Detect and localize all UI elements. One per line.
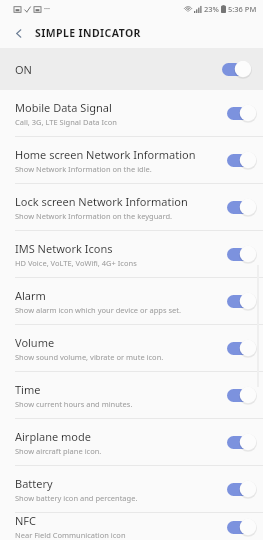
staticText: Show alarm icon which your device or app… bbox=[15, 305, 182, 315]
staticText: Show aircraft plane icon. bbox=[15, 446, 102, 456]
staticText: Show sound volume, vibrate or mute icon. bbox=[15, 352, 164, 362]
button[interactable]: ON bbox=[0, 48, 263, 90]
button[interactable]: Lock screen Network Information bbox=[0, 184, 263, 230]
staticText: Battery bbox=[15, 476, 53, 491]
staticText: HD Voice, VoLTE, VoWifi, 4G+ Icons bbox=[15, 258, 137, 268]
button[interactable]: Toggle bbox=[227, 104, 257, 122]
button[interactable]: Volume bbox=[0, 325, 263, 371]
button[interactable]: Toggle bbox=[227, 480, 257, 498]
button[interactable]: Back bbox=[8, 22, 30, 44]
staticText: ON bbox=[15, 62, 32, 77]
staticText: NFC bbox=[15, 513, 37, 528]
staticText: Time bbox=[15, 382, 41, 397]
button[interactable]: Toggle bbox=[227, 386, 257, 404]
button[interactable]: Alarm bbox=[0, 278, 263, 324]
staticText: Show battery icon and percentage. bbox=[15, 493, 138, 503]
staticText: Volume bbox=[15, 335, 55, 350]
staticText: Show current hours and minutes. bbox=[15, 399, 133, 409]
staticText: Alarm bbox=[15, 288, 46, 303]
staticText: Near Field Communication icon bbox=[15, 530, 126, 540]
staticText: Show Network Information on the idle. bbox=[15, 164, 152, 174]
button[interactable]: Toggle bbox=[227, 433, 257, 451]
staticText: Show Network Information on the keyguard… bbox=[15, 211, 173, 221]
staticText: Call, 3G, LTE Signal Data Icon bbox=[15, 117, 117, 127]
staticText: Mobile Data Signal bbox=[15, 100, 112, 115]
button[interactable]: Toggle bbox=[227, 339, 257, 357]
staticText: Home screen Network Information bbox=[15, 147, 196, 162]
button[interactable]: Home screen Network Information bbox=[0, 137, 263, 183]
staticText: ··· bbox=[44, 4, 50, 14]
staticText: IMS Network Icons bbox=[15, 241, 113, 256]
staticText: 5:36 PM bbox=[228, 4, 257, 14]
staticText: Lock screen Network Information bbox=[15, 194, 188, 209]
button[interactable]: Mobile Data Signal bbox=[0, 90, 263, 136]
button[interactable]: IMS Network Icons bbox=[0, 231, 263, 277]
button[interactable]: Airplane mode bbox=[0, 419, 263, 465]
button[interactable]: Battery bbox=[0, 466, 263, 512]
button[interactable]: Toggle bbox=[227, 518, 257, 536]
button[interactable]: Toggle bbox=[227, 245, 257, 263]
button[interactable]: Time bbox=[0, 372, 263, 418]
staticText: Airplane mode bbox=[15, 429, 91, 444]
staticText: 23% bbox=[204, 4, 219, 14]
button[interactable]: NFC bbox=[0, 513, 263, 540]
button[interactable]: Toggle bbox=[227, 292, 257, 310]
button[interactable]: Toggle bbox=[227, 198, 257, 216]
button[interactable]: Toggle bbox=[227, 151, 257, 169]
button[interactable]: Toggle bbox=[222, 60, 252, 78]
staticText: SIMPLE INDICATOR bbox=[35, 26, 141, 40]
